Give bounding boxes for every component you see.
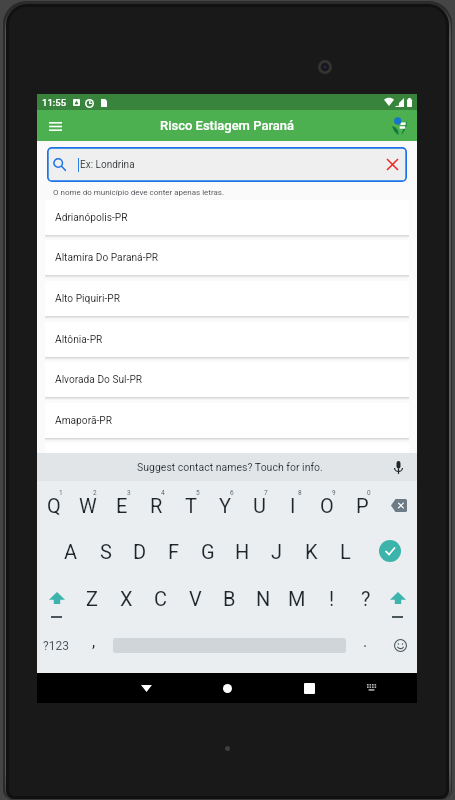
staticText: Y: [219, 494, 232, 517]
button[interactable]: Clear search text: [384, 156, 401, 173]
staticText: K: [305, 540, 318, 563]
staticText: 3: [127, 489, 131, 497]
button[interactable]: G: [191, 531, 225, 571]
button[interactable]: L: [328, 531, 362, 571]
button[interactable]: X: [109, 578, 143, 618]
button[interactable]: F: [157, 531, 191, 571]
button[interactable]: Shift: [381, 586, 415, 622]
staticText: P: [356, 494, 369, 517]
button[interactable]: Adrianópolis-PR: [45, 200, 409, 235]
staticText: Suggest contact names? Touch for info.: [137, 461, 323, 473]
staticText: I: [290, 494, 296, 517]
button[interactable]: Home: [215, 676, 239, 700]
staticText: T: [185, 494, 197, 517]
button[interactable]: H: [225, 531, 259, 571]
button[interactable]: Switch keyboard: [360, 676, 384, 700]
button[interactable]: O: [310, 485, 344, 525]
button[interactable]: ?: [349, 578, 383, 618]
button[interactable]: Back: [134, 676, 158, 700]
staticText: D: [133, 540, 147, 563]
button[interactable]: T: [174, 485, 208, 525]
button[interactable]: Altônia-PR: [45, 322, 409, 357]
button[interactable]: About the app: [386, 113, 411, 138]
button[interactable]: P: [345, 485, 379, 525]
staticText: 9: [332, 489, 336, 497]
staticText: W: [79, 494, 97, 517]
staticText: Q: [47, 494, 61, 517]
button[interactable]: Open navigation menu: [43, 114, 67, 138]
staticText: ,: [92, 632, 96, 651]
button[interactable]: ,: [79, 627, 109, 663]
button[interactable]: K: [294, 531, 328, 571]
button[interactable]: B: [212, 578, 246, 618]
button[interactable]: W: [71, 485, 105, 525]
staticText: V: [189, 587, 202, 610]
staticText: O nome do município deve conter apenas l…: [53, 188, 225, 197]
staticText: ?: [361, 587, 371, 610]
button[interactable]: N: [246, 578, 280, 618]
button[interactable]: Alto Piquiri-PR: [45, 281, 409, 316]
staticText: S: [100, 540, 112, 563]
staticText: F: [168, 540, 180, 563]
button[interactable]: U: [242, 485, 276, 525]
staticText: Altamira Do Paraná-PR: [55, 252, 159, 264]
staticText: G: [201, 540, 215, 563]
staticText: 6: [230, 489, 234, 497]
button[interactable]: !: [315, 578, 349, 618]
staticText: 7: [264, 489, 268, 497]
staticText: Adrianópolis-PR: [55, 212, 128, 224]
staticText: ?123: [43, 639, 69, 653]
button[interactable]: S: [89, 531, 123, 571]
button[interactable]: Enter: [379, 540, 401, 562]
staticText: 2: [93, 489, 97, 497]
button[interactable]: ?123: [38, 627, 74, 663]
button[interactable]: J: [260, 531, 294, 571]
button[interactable]: V: [178, 578, 212, 618]
button[interactable]: Q: [37, 485, 71, 525]
button[interactable]: E: [105, 485, 139, 525]
button[interactable]: Ex: Londrina: [47, 147, 407, 182]
button[interactable]: Shift: [40, 586, 74, 622]
staticText: J: [271, 540, 283, 563]
button[interactable]: Y: [208, 485, 242, 525]
staticText: 11:55: [42, 97, 67, 108]
staticText: Altônia-PR: [55, 334, 103, 346]
button[interactable]: Emoji keyboard: [383, 627, 417, 663]
staticText: 1: [59, 489, 63, 497]
button[interactable]: Recent apps: [297, 676, 321, 700]
staticText: 8: [298, 489, 302, 497]
button[interactable]: C: [144, 578, 178, 618]
button[interactable]: Backspace: [380, 491, 417, 519]
button[interactable]: R: [139, 485, 173, 525]
staticText: C: [154, 587, 168, 610]
button[interactable]: Z: [75, 578, 109, 618]
staticText: !: [329, 587, 335, 610]
button[interactable]: Altamira Do Paraná-PR: [45, 240, 409, 275]
staticText: H: [235, 540, 250, 563]
staticText: 5: [196, 489, 200, 497]
staticText: U: [253, 494, 266, 517]
button[interactable]: .: [350, 627, 380, 663]
staticText: O: [320, 494, 334, 517]
staticText: .: [363, 632, 368, 651]
button[interactable]: Andirá-PR: [45, 443, 409, 478]
button[interactable]: D: [123, 531, 157, 571]
staticText: 0: [367, 489, 371, 497]
staticText: X: [120, 587, 133, 610]
button[interactable]: Voice input: [389, 458, 407, 476]
button[interactable]: M: [280, 578, 314, 618]
staticText: Risco Estiagem Paraná: [160, 118, 295, 133]
staticText: 4: [161, 489, 165, 497]
staticText: E: [116, 494, 128, 517]
button[interactable]: A: [54, 531, 88, 571]
staticText: M: [288, 587, 306, 610]
staticText: Amaporã-PR: [55, 415, 112, 427]
button[interactable]: I: [276, 485, 310, 525]
button[interactable]: Amaporã-PR: [45, 403, 409, 438]
staticText: L: [340, 540, 351, 563]
button[interactable]: Alvorada Do Sul-PR: [45, 362, 409, 397]
staticText: Ex: Londrina: [80, 159, 135, 171]
staticText: Z: [86, 587, 98, 610]
